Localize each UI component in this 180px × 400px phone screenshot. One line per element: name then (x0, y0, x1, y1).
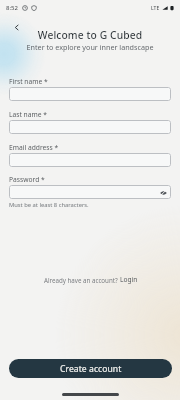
staticText: Email address * (9, 143, 59, 152)
staticText: Login (120, 275, 138, 284)
button[interactable] (9, 120, 171, 134)
staticText: Password * (9, 175, 45, 184)
staticText: Must be at least 8 characters. (9, 201, 89, 209)
staticText: LTE (151, 5, 160, 12)
button[interactable]: Create account (9, 359, 172, 378)
button[interactable]: Already have an account? (44, 275, 138, 284)
staticText: 8:52 (6, 4, 18, 12)
button[interactable]: Show password (9, 185, 171, 199)
button[interactable] (9, 153, 171, 167)
staticText: First name * (9, 77, 48, 86)
staticText: Last name * (9, 110, 47, 119)
button[interactable] (9, 87, 171, 101)
staticText: Welcome to G Cubed (0, 28, 180, 42)
button[interactable]: Show password (159, 188, 168, 197)
staticText: Create account (60, 363, 122, 375)
staticText: Already have an account? (44, 276, 120, 284)
staticText: Enter to explore your inner landscape (0, 42, 180, 52)
button[interactable]: Back (9, 20, 23, 34)
